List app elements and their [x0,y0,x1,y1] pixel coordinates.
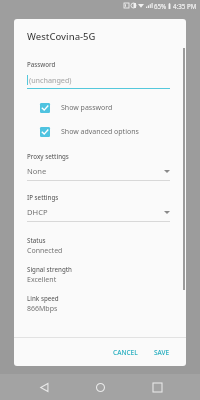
button[interactable]: CANCEL [107,344,144,361]
button[interactable]: Show advanced options [14,125,186,139]
button[interactable]: None [27,166,170,181]
staticText: 866Mbps [27,304,58,314]
staticText: Excellent [27,275,57,285]
button[interactable]: Home [87,374,113,400]
staticText: 4:35 PM [173,2,197,10]
button[interactable]: DHCP [27,207,170,222]
staticText: Link speed [27,294,59,302]
staticText: 65% [154,2,167,10]
staticText: Status [27,236,46,244]
button[interactable]: (unchanged) [27,75,170,89]
staticText: CANCEL [113,348,138,357]
staticText: Show password [61,103,113,113]
staticText: DHCP [27,207,48,217]
button[interactable]: Back [31,374,57,400]
staticText: None [27,166,47,176]
button[interactable]: Recents [144,374,170,400]
staticText: Signal strength [27,265,72,273]
button[interactable]: SAVE [148,344,176,361]
staticText: Proxy settings [27,152,69,160]
button[interactable]: Show password [14,101,186,115]
staticText: Show advanced options [61,127,139,137]
staticText: WestCovina-5G [27,30,96,43]
staticText: IP settings [27,193,59,201]
staticText: SAVE [154,348,170,357]
staticText: Connected [27,246,63,256]
staticText: (unchanged) [29,75,72,85]
staticText: Password [27,60,56,68]
